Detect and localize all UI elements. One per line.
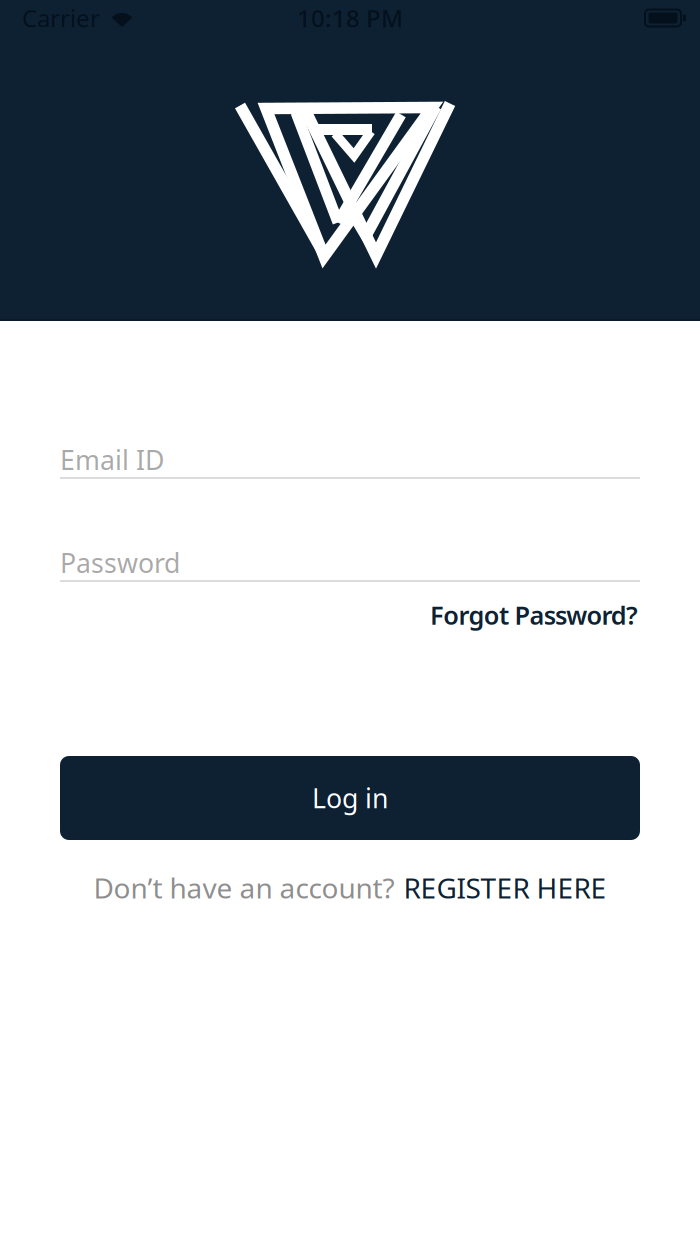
staticText: Email ID: [60, 442, 164, 477]
staticText: REGISTER HERE: [403, 869, 606, 906]
button[interactable]: Forgot Password?: [430, 598, 638, 632]
button[interactable]: Password: [60, 545, 640, 585]
staticText: Log in: [312, 780, 388, 816]
button[interactable]: Log in: [60, 756, 640, 840]
staticText: Carrier: [22, 2, 100, 34]
button[interactable]: Don’t have an account?: [93, 869, 606, 906]
staticText: Password: [60, 545, 180, 580]
staticText: 10:18 PM: [297, 2, 403, 34]
button[interactable]: Email ID: [60, 442, 640, 482]
staticText: Don’t have an account?: [93, 869, 394, 906]
staticText: Forgot Password?: [430, 598, 638, 632]
